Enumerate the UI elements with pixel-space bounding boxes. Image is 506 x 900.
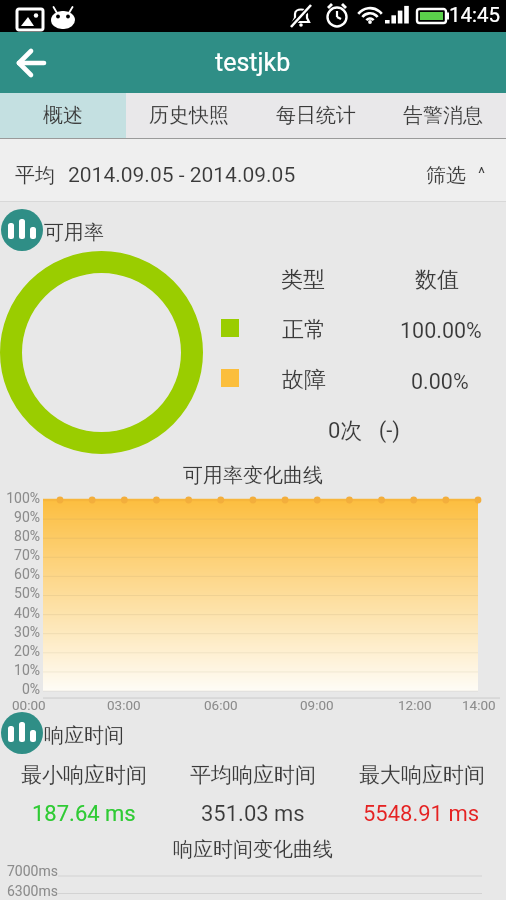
staticText: 数值 [415, 266, 459, 294]
staticText: 03:00 [107, 697, 141, 713]
staticText: 06:00 [204, 697, 238, 713]
staticText: 类型 [281, 266, 325, 294]
staticText: 可用率变化曲线 [183, 463, 323, 488]
staticText: 351.03 ms [201, 801, 305, 827]
staticText: 可用率 [44, 220, 104, 245]
staticText: 概述 [43, 103, 83, 128]
staticText: 平均响应时间 [190, 762, 316, 788]
staticText: 0.00% [411, 369, 469, 394]
staticText: 30% [14, 624, 40, 640]
button[interactable]: 历史快照 [126, 93, 252, 138]
staticText: 每日统计 [276, 103, 356, 128]
staticText: 70% [14, 547, 40, 563]
staticText: 2014.09.05 - 2014.09.05 [68, 163, 296, 188]
staticText: 7000ms [7, 863, 58, 879]
staticText: 60% [14, 566, 40, 582]
staticText: 6300ms [7, 883, 58, 899]
staticText: 20% [14, 643, 40, 659]
staticText: 10% [14, 662, 40, 678]
staticText: 0% [21, 681, 40, 697]
staticText: ^ [478, 163, 486, 183]
staticText: 最小响应时间 [21, 762, 147, 788]
staticText: 正常 [282, 316, 326, 344]
staticText: 0次 (-) [328, 417, 401, 445]
staticText: 14:00 [462, 697, 496, 713]
button[interactable]: Back [0, 32, 60, 93]
staticText: 12:00 [398, 697, 432, 713]
button[interactable]: 概述 [0, 93, 126, 138]
staticText: 平均 [15, 163, 55, 188]
staticText: 告警消息 [403, 103, 483, 128]
staticText: 00:00 [12, 697, 46, 713]
staticText: 80% [14, 528, 40, 544]
staticText: 09:00 [300, 697, 334, 713]
staticText: 187.64 ms [32, 801, 136, 827]
staticText: 90% [14, 509, 40, 525]
staticText: 筛选 [426, 163, 466, 188]
staticText: 最大响应时间 [359, 762, 485, 788]
staticText: testjkb [215, 48, 291, 77]
staticText: 14:45 [449, 3, 501, 27]
staticText: 故障 [282, 366, 326, 394]
staticText: 40% [14, 605, 40, 621]
staticText: 历史快照 [149, 103, 229, 128]
button[interactable]: 每日统计 [252, 93, 379, 138]
staticText: 5548.91 ms [363, 801, 480, 827]
staticText: 100% [6, 490, 40, 506]
button[interactable]: 告警消息 [379, 93, 506, 138]
staticText: 响应时间变化曲线 [173, 837, 333, 862]
staticText: 50% [14, 585, 40, 601]
button[interactable]: 筛选 [426, 150, 486, 201]
staticText: 响应时间 [44, 723, 124, 748]
staticText: 100.00% [400, 318, 482, 343]
